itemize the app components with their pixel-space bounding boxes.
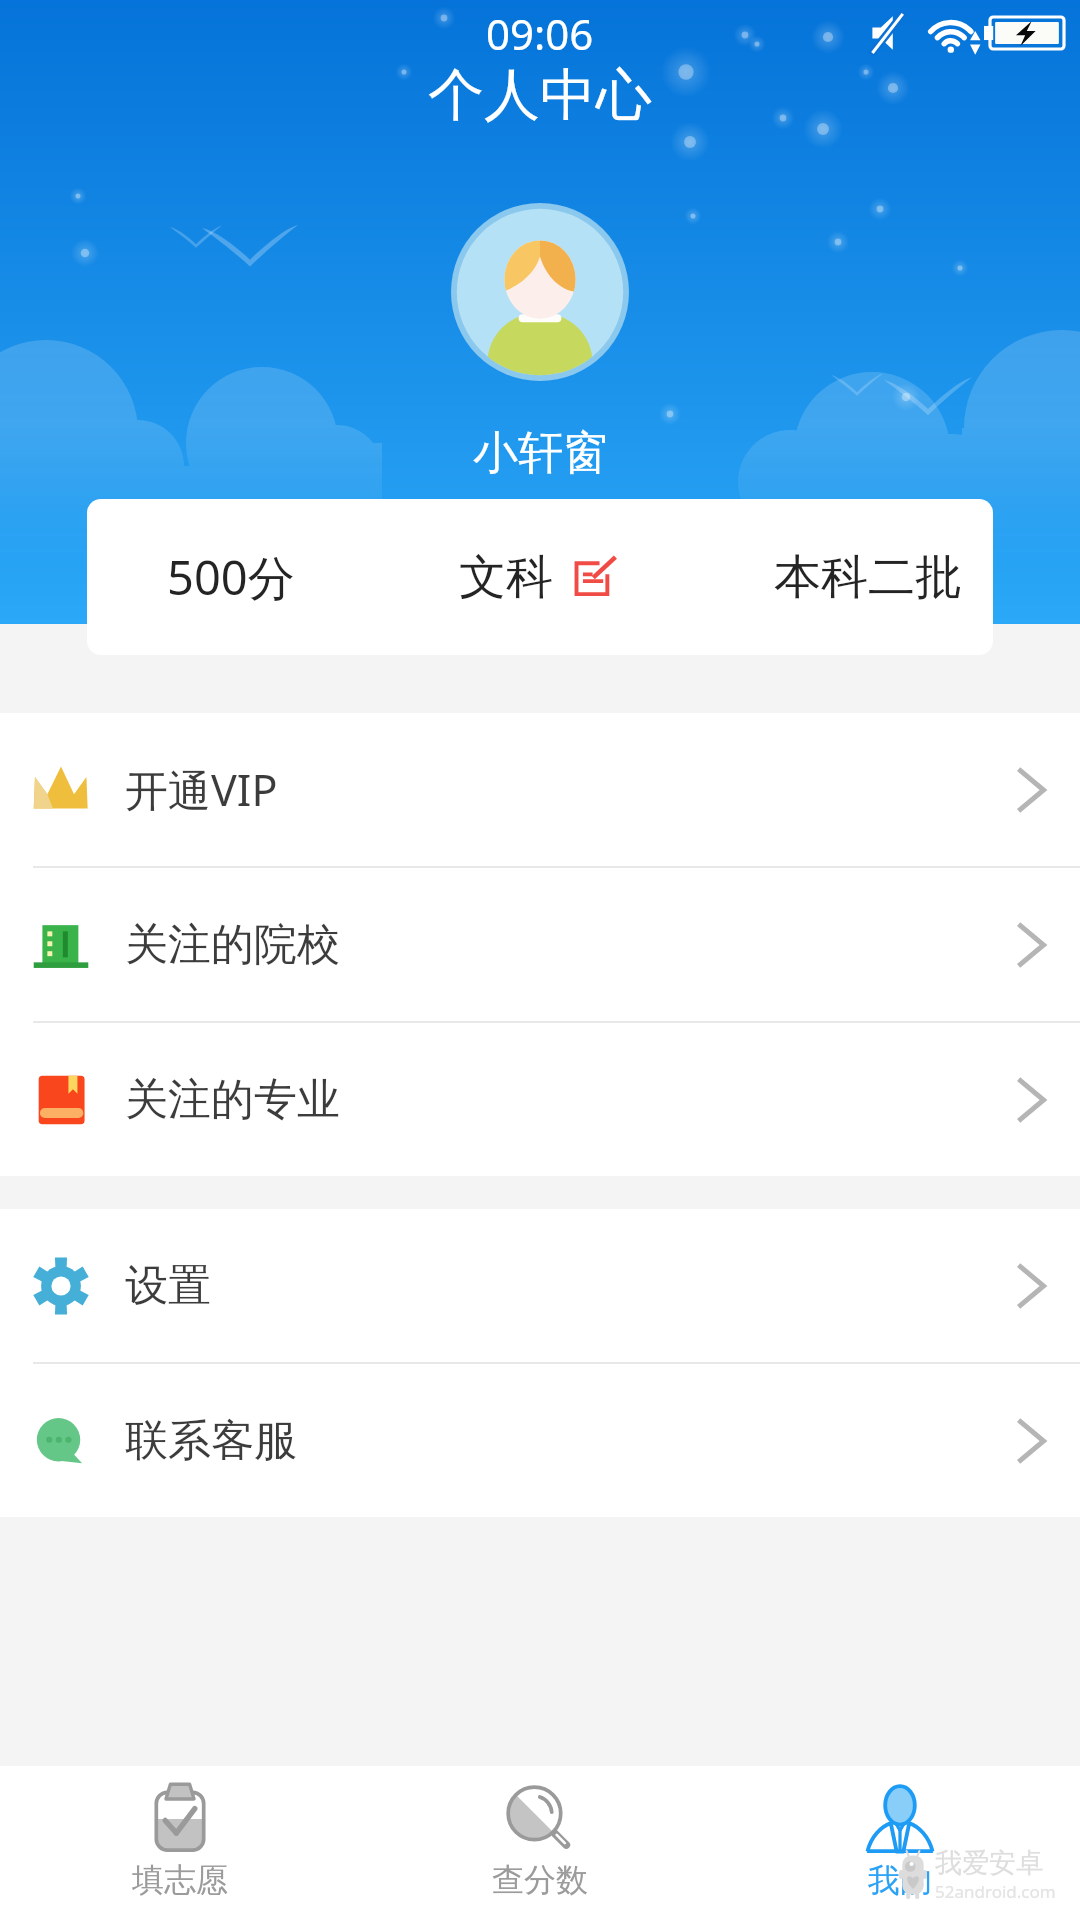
staticText: 我爱安卓 — [935, 1846, 1043, 1880]
staticText: 设置 — [125, 1259, 211, 1313]
staticText: 我的 — [868, 1860, 932, 1900]
staticText: 联系客服 — [125, 1414, 297, 1468]
staticText: 个人中心 — [428, 60, 652, 131]
staticText: 500分 — [167, 545, 295, 609]
staticText: 小轩窗 — [473, 425, 608, 482]
button[interactable]: 500分 — [87, 499, 993, 655]
button[interactable]: 关注的专业 — [0, 1023, 1080, 1176]
staticText: 本科二批 — [774, 548, 962, 607]
button[interactable]: 查分数 — [360, 1766, 720, 1920]
staticText: 52android.com — [935, 1880, 1056, 1903]
button[interactable]: 联系客服 — [0, 1364, 1080, 1517]
staticText: 文科 — [459, 548, 553, 607]
staticText: 查分数 — [492, 1860, 588, 1900]
staticText: 开通VIP — [125, 760, 278, 819]
staticText: 09:06 — [486, 5, 594, 62]
button[interactable]: 填志愿 — [0, 1766, 360, 1920]
staticText: 关注的专业 — [125, 1073, 340, 1127]
button[interactable]: 我的 — [720, 1766, 1080, 1920]
button[interactable]: 开通VIP — [0, 713, 1080, 866]
button[interactable]: 设置 — [0, 1209, 1080, 1362]
staticText: 关注的院校 — [125, 918, 340, 972]
staticText: 填志愿 — [132, 1860, 228, 1900]
button[interactable]: 关注的院校 — [0, 868, 1080, 1021]
